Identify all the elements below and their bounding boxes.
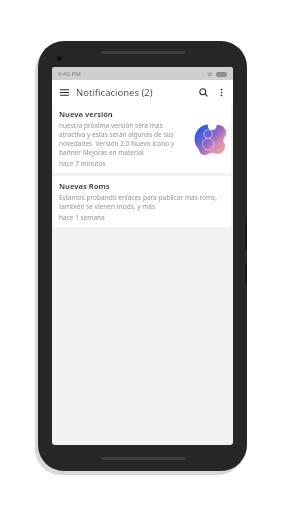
button[interactable]: Search	[194, 83, 212, 101]
staticText: Nueva versión	[59, 109, 113, 119]
button[interactable]: Nuevas Roms	[54, 176, 231, 227]
staticText: Notificaciones (2)	[76, 86, 153, 99]
staticText: 8:40 PM	[58, 70, 81, 78]
button[interactable]: Nueva versión	[54, 104, 231, 173]
staticText: Nuevas Roms	[59, 181, 110, 191]
staticText: hace 7 minutos	[59, 159, 106, 168]
staticText: nuestra próxima versión sera mas atracti…	[59, 121, 188, 157]
staticText: Estamos probando enlaces para publicar m…	[59, 193, 227, 211]
button[interactable]: More options	[212, 83, 230, 101]
button[interactable]: Open navigation menu	[56, 84, 72, 100]
staticText: hace 1 semana	[59, 213, 105, 222]
